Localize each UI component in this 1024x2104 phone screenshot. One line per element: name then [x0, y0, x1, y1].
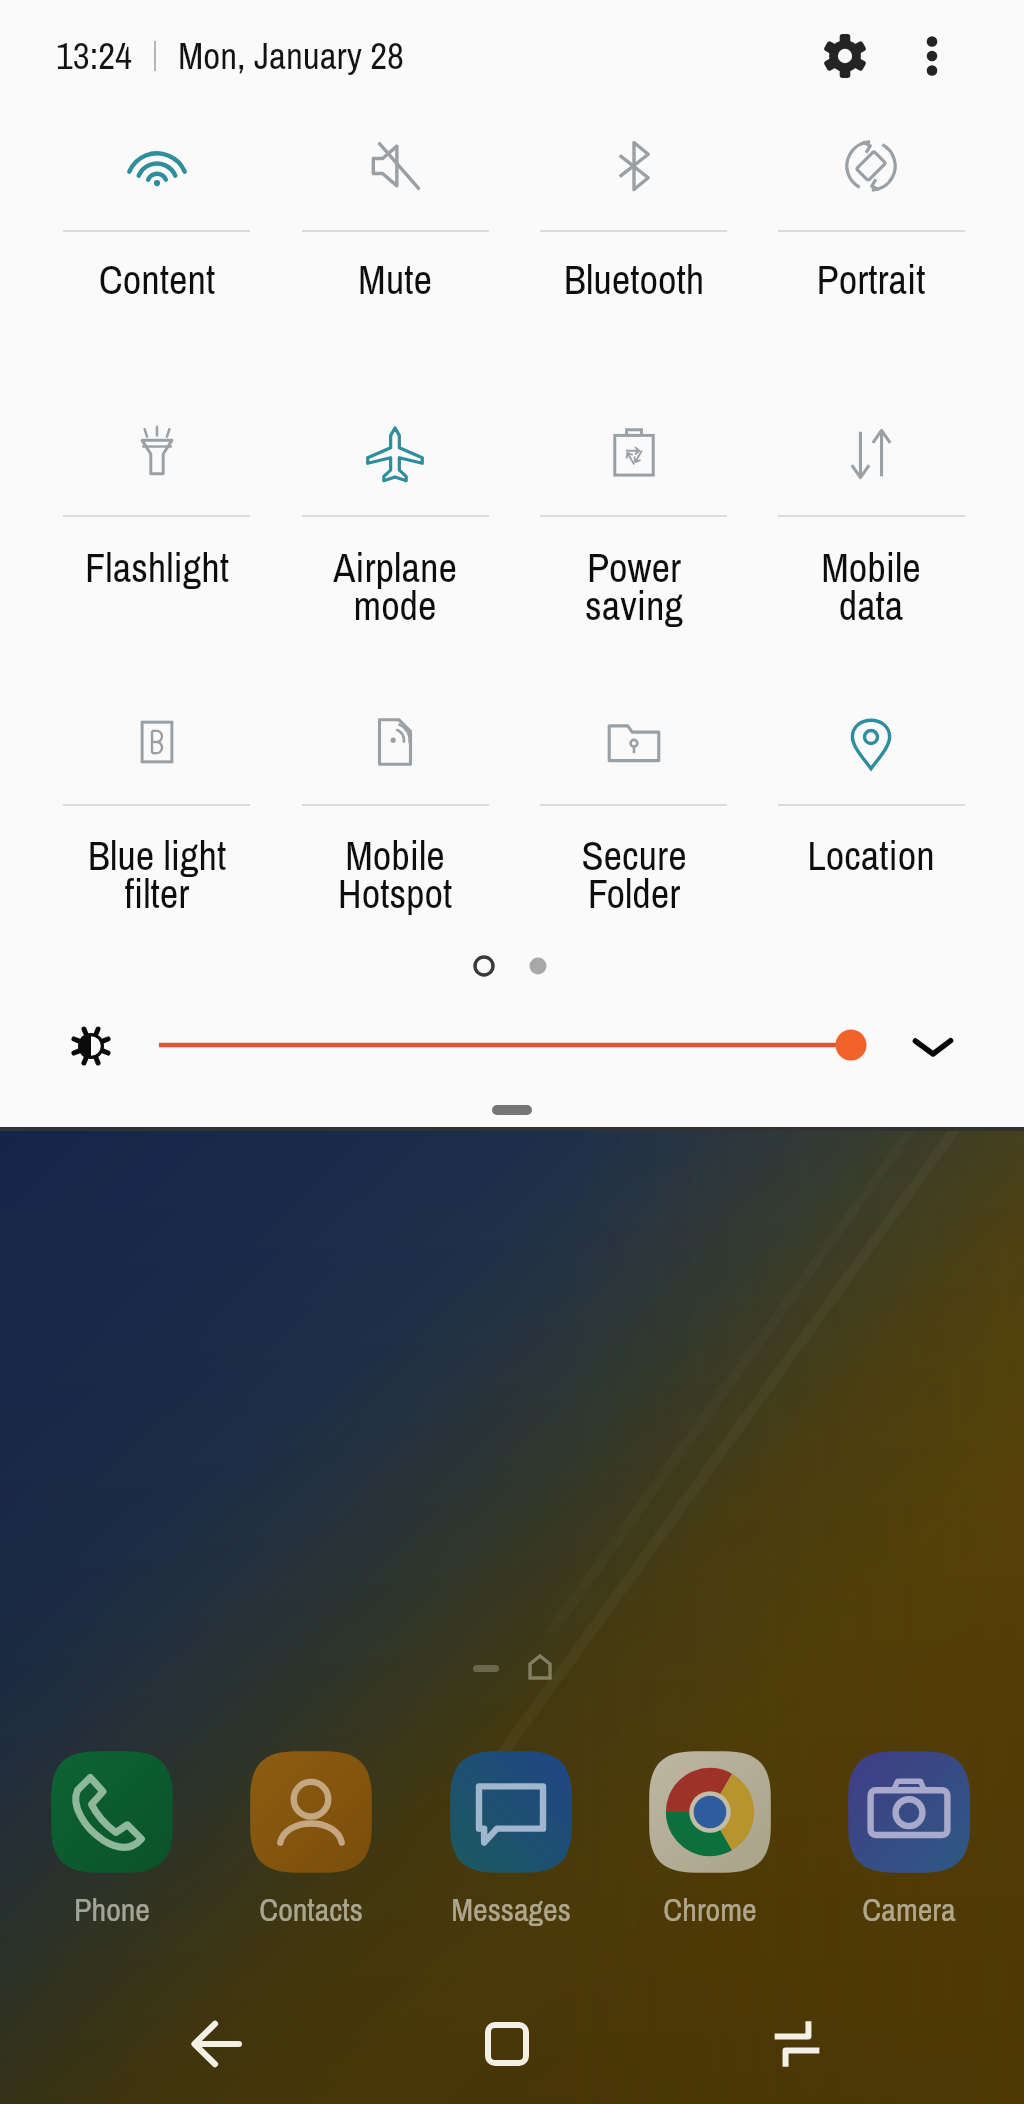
staticText: Bluetooth	[515, 252, 753, 307]
button[interactable]	[38, 392, 276, 572]
staticText: Location	[752, 828, 990, 883]
staticText: Mute	[276, 252, 514, 307]
button[interactable]: Page 2	[520, 948, 556, 984]
button[interactable]	[38, 680, 276, 860]
button[interactable]	[276, 104, 514, 284]
button[interactable]: Page 1	[466, 948, 502, 984]
button[interactable]	[845, 1746, 973, 1932]
staticText: Blue light filter	[38, 828, 276, 921]
button[interactable]	[515, 392, 753, 572]
button[interactable]	[752, 392, 990, 572]
staticText: Flashlight	[38, 540, 276, 595]
staticText: Contacts	[201, 1888, 421, 1931]
button[interactable]	[276, 392, 514, 572]
button[interactable]	[38, 104, 276, 284]
staticText: Camera	[799, 1888, 1019, 1931]
button[interactable]: Brightness	[55, 1010, 127, 1082]
button[interactable]	[752, 680, 990, 860]
button[interactable]	[752, 104, 990, 284]
staticText: Chrome	[600, 1888, 820, 1931]
button[interactable]	[447, 1746, 575, 1932]
button[interactable]	[646, 1746, 774, 1932]
button[interactable]	[276, 680, 514, 860]
staticText: Phone	[2, 1888, 222, 1931]
staticText: Mobile Hotspot	[276, 828, 514, 921]
button[interactable]: Settings	[815, 26, 875, 86]
staticText: Content	[38, 252, 276, 307]
staticText: Secure Folder	[515, 828, 753, 921]
button[interactable]: More options	[902, 26, 962, 86]
button[interactable]: Expand quick settings	[903, 1016, 963, 1076]
staticText: Power saving	[515, 540, 753, 633]
button[interactable]: Home	[452, 1989, 562, 2099]
button[interactable]	[247, 1746, 375, 1932]
button[interactable]: Recent apps	[742, 1989, 852, 2099]
button[interactable]	[48, 1746, 176, 1932]
button[interactable]: Collapse panel	[492, 1105, 532, 1115]
button[interactable]: Back	[161, 1989, 271, 2099]
button[interactable]	[515, 680, 753, 860]
button[interactable]	[515, 104, 753, 284]
staticText: Messages	[401, 1888, 621, 1931]
staticText: 13:24	[56, 31, 132, 81]
staticText: Airplane mode	[276, 540, 514, 633]
staticText: Mobile data	[752, 540, 990, 633]
staticText: Mon, January 28	[178, 31, 404, 81]
staticText: Portrait	[752, 252, 990, 307]
